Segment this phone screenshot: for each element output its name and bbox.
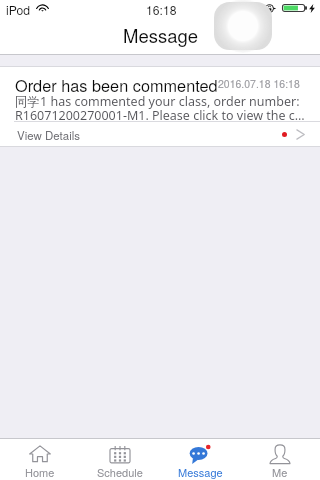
staticText: Message	[123, 22, 199, 48]
staticText: 16:18	[146, 1, 177, 18]
staticText: 同学1 has commented your class, order numb…	[15, 93, 307, 123]
button[interactable]: Schedule	[80, 439, 160, 480]
other: AssistiveTouch	[214, 2, 272, 50]
staticText: iPod	[6, 1, 31, 18]
button[interactable]: Home	[0, 439, 80, 480]
staticText: Me	[272, 464, 288, 480]
staticText: Order has been commented	[15, 73, 218, 96]
staticText: Home	[25, 464, 55, 480]
button[interactable]: Message	[160, 439, 240, 480]
staticText: Message	[178, 464, 223, 480]
staticText: View Details	[17, 127, 81, 143]
staticText: Schedule	[97, 464, 143, 480]
button[interactable]: Order has been commented	[0, 66, 320, 147]
staticText: 2016.07.18 16:18	[218, 76, 300, 91]
button[interactable]: Me	[240, 439, 320, 480]
